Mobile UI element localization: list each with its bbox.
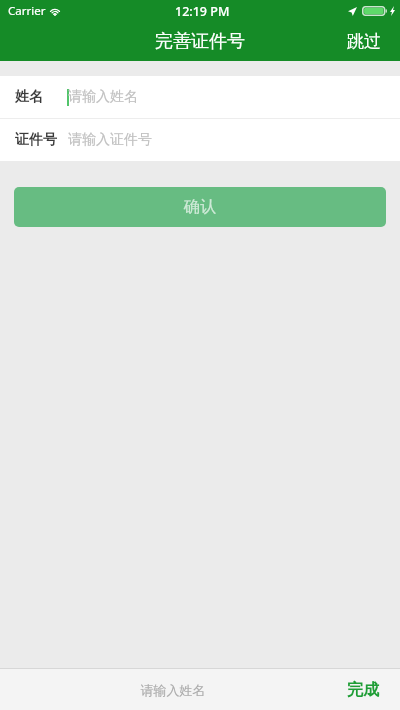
staticText: 请输入证件号 [68,131,152,149]
button[interactable]: 跳过 [331,23,400,60]
button[interactable]: 证件号 [0,119,400,161]
staticText: 请输入姓名 [68,88,138,106]
other: Location [348,7,357,16]
staticText: Carrier [8,3,46,19]
staticText: 跳过 [347,31,381,52]
staticText: 完善证件号 [155,30,245,53]
other: Battery [362,6,387,16]
staticText: 姓名 [15,88,43,106]
button[interactable]: 完成 [333,670,400,710]
button[interactable]: 确认 [14,187,386,227]
staticText: 证件号 [15,131,57,149]
staticText: 完成 [347,680,379,700]
staticText: 请输入姓名 [13,682,333,698]
staticText: 12:19 PM [175,3,230,20]
button[interactable]: 姓名 [0,76,400,118]
staticText: 确认 [184,197,216,217]
